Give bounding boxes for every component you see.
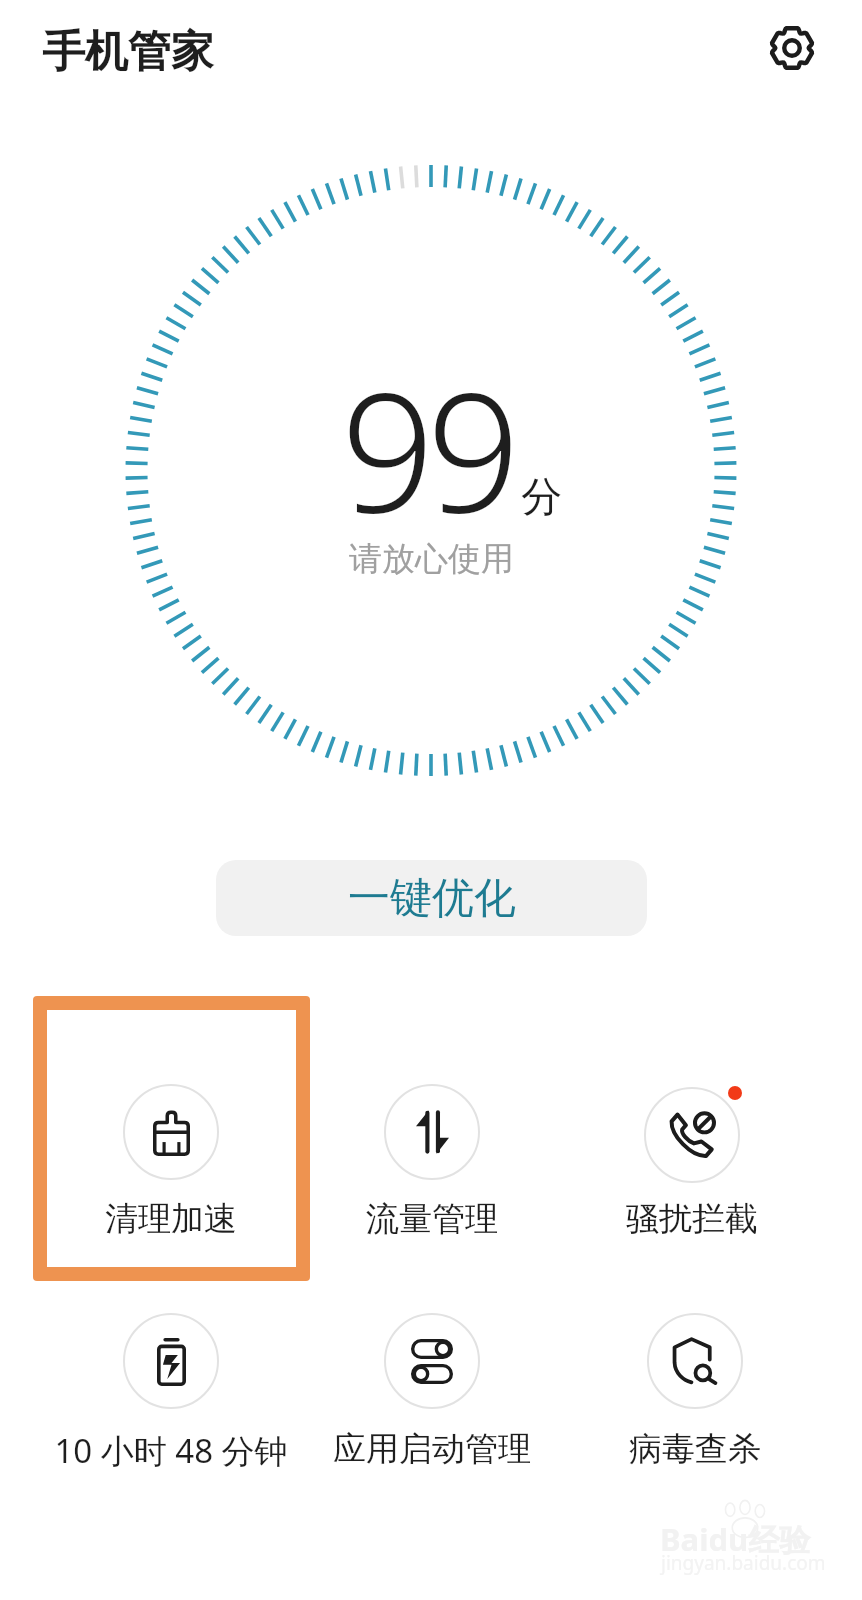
- staticText: 一键优化: [348, 872, 516, 925]
- staticText: 骚扰拦截: [626, 1198, 758, 1240]
- button[interactable]: 流量管理: [301, 1064, 562, 1246]
- button[interactable]: 应用启动管理: [301, 1293, 562, 1476]
- staticText: 流量管理: [366, 1198, 498, 1240]
- button[interactable]: 10 小时 48 分钟: [40, 1293, 301, 1476]
- staticText: 10 小时 48 分钟: [54, 1428, 288, 1473]
- button[interactable]: 骚扰拦截: [561, 1067, 822, 1246]
- staticText: 分: [521, 472, 562, 524]
- staticText: 99: [341, 337, 513, 560]
- staticText: 清理加速: [105, 1198, 237, 1240]
- button[interactable]: 一键优化: [216, 860, 647, 936]
- button[interactable]: 清理加速: [40, 1064, 301, 1246]
- staticText: 手机管家: [42, 25, 214, 79]
- staticText: Baidu经验: [660, 1518, 811, 1560]
- staticText: 病毒查杀: [629, 1428, 761, 1470]
- button[interactable]: Settings: [760, 16, 824, 80]
- staticText: 应用启动管理: [333, 1428, 531, 1470]
- staticText: 请放心使用: [349, 538, 514, 580]
- button[interactable]: 病毒查杀: [564, 1293, 825, 1476]
- staticText: jingyan.baidu.com: [661, 1550, 826, 1576]
